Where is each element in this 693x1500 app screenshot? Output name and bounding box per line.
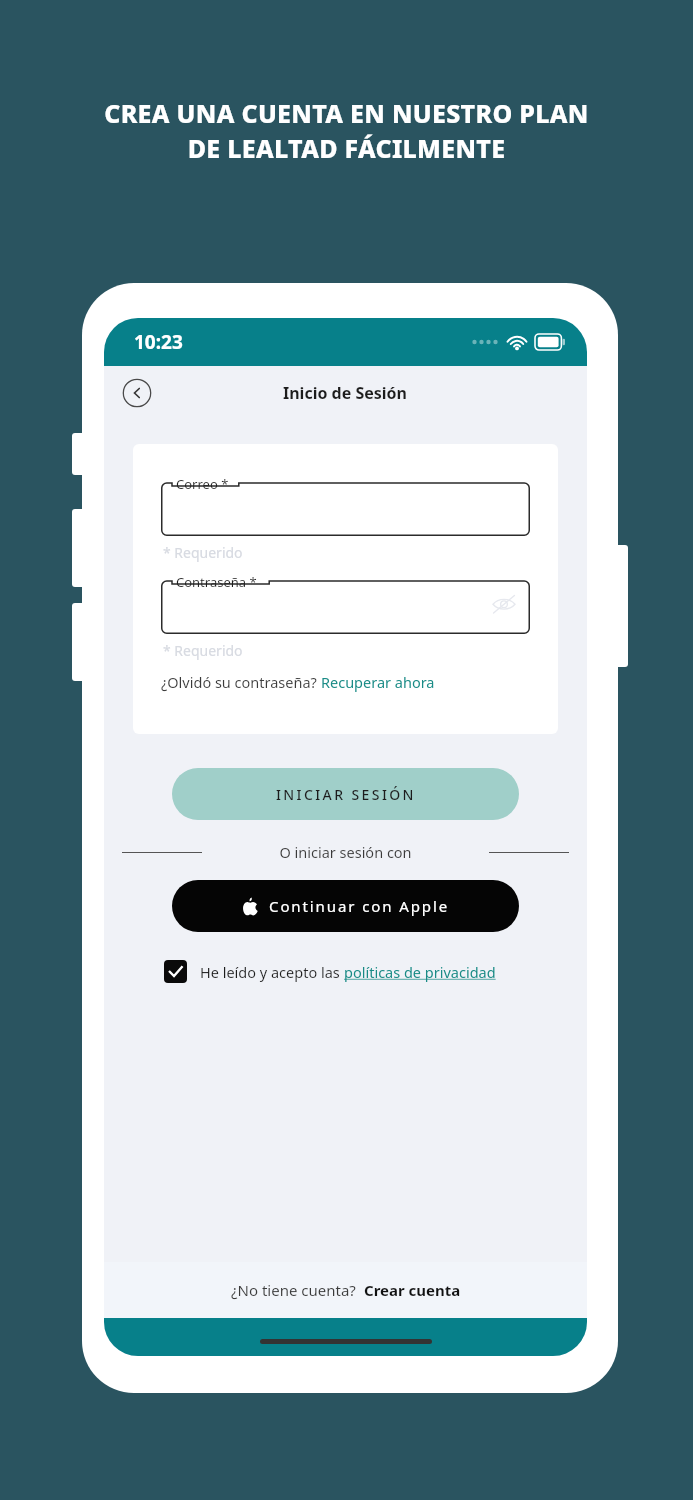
- staticText: * Requerido: [163, 641, 243, 660]
- button[interactable]: Crear cuenta: [364, 1280, 461, 1300]
- button[interactable]: Back: [122, 378, 152, 408]
- staticText: Inicio de Sesión: [283, 382, 408, 404]
- staticText: He leído y acepto las: [200, 962, 344, 982]
- staticText: Crear cuenta: [364, 1280, 461, 1300]
- staticText: ¿Olvidó su contraseña?: [161, 672, 321, 692]
- staticText: Recuperar ahora: [321, 672, 435, 692]
- button[interactable]: Acepto políticas: [164, 960, 187, 983]
- button[interactable]: Continuar con Apple: [172, 880, 519, 932]
- staticText: 10:23: [134, 329, 183, 355]
- staticText: políticas de privacidad: [344, 962, 496, 982]
- button[interactable]: INICIAR SESIÓN: [172, 768, 519, 820]
- staticText: * Requerido: [163, 543, 243, 562]
- staticText: Continuar con Apple: [269, 896, 450, 916]
- staticText: O iniciar sesión con: [202, 842, 489, 862]
- staticText: Correo *: [176, 475, 229, 493]
- button[interactable]: políticas de privacidad: [344, 962, 496, 982]
- staticText: CREA UNA CUENTA EN NUESTRO PLAN DE LEALT…: [104, 96, 589, 166]
- staticText: INICIAR SESIÓN: [276, 785, 416, 804]
- button[interactable]: Recuperar ahora: [321, 672, 435, 692]
- staticText: Contraseña *: [176, 573, 257, 591]
- staticText: ¿No tiene cuenta?: [231, 1280, 364, 1300]
